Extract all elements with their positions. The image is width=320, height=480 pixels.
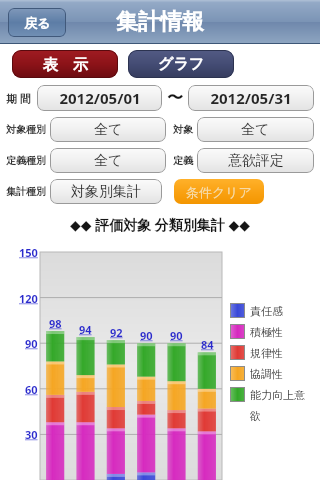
staticText: 条件クリア — [186, 184, 252, 200]
staticText: 積極性 — [250, 325, 283, 339]
staticText: 150 — [19, 245, 38, 260]
staticText: 84 — [201, 337, 214, 352]
staticText: 対象種別 — [6, 123, 46, 136]
button[interactable]: 条件クリア — [174, 179, 264, 204]
staticText: 2012/05/31 — [210, 88, 292, 108]
staticText: 意欲評定 — [228, 152, 284, 170]
staticText: 責任感 — [250, 304, 283, 318]
button[interactable]: グラフ — [128, 50, 234, 78]
button[interactable]: 全て — [50, 148, 166, 173]
staticText: 期 間 — [6, 91, 31, 106]
staticText: 94 — [79, 322, 92, 337]
staticText: 表 示 — [43, 54, 88, 74]
button[interactable]: 2012/05/31 — [188, 85, 314, 111]
staticText: 120 — [19, 291, 38, 306]
button[interactable]: 対象別集計 — [50, 179, 162, 204]
staticText: 規律性 — [250, 346, 283, 360]
staticText: 戻る — [24, 15, 51, 31]
button[interactable]: 戻る — [8, 8, 66, 37]
staticText: 全て — [94, 121, 123, 139]
staticText: 30 — [25, 427, 38, 442]
staticText: 対象別集計 — [71, 183, 141, 201]
staticText: ◆◆ 評価対象 分類別集計 ◆◆ — [70, 215, 250, 234]
staticText: 92 — [110, 325, 123, 340]
staticText: 〜 — [167, 88, 183, 108]
staticText: 定義種別 — [6, 154, 46, 167]
staticText: 対象 — [173, 123, 193, 136]
button[interactable]: 意欲評定 — [197, 148, 314, 173]
staticText: 欲 — [250, 409, 261, 423]
staticText: 90 — [170, 328, 183, 343]
staticText: 協調性 — [250, 367, 283, 381]
staticText: 能力向上意 — [250, 388, 305, 402]
staticText: 90 — [140, 328, 153, 343]
staticText: 全て — [241, 121, 270, 139]
staticText: 60 — [25, 382, 38, 397]
staticText: 98 — [49, 316, 62, 331]
button[interactable]: 全て — [197, 117, 314, 142]
staticText: 90 — [25, 336, 38, 351]
staticText: 集計種別 — [6, 185, 46, 198]
button[interactable]: 2012/05/01 — [37, 85, 162, 111]
staticText: 集計情報 — [116, 8, 204, 36]
button[interactable]: 表 示 — [12, 50, 118, 78]
staticText: 定義 — [173, 154, 193, 167]
staticText: グラフ — [158, 55, 205, 74]
button[interactable]: 全て — [50, 117, 166, 142]
staticText: 2012/05/01 — [59, 88, 141, 108]
staticText: 全て — [94, 152, 123, 170]
